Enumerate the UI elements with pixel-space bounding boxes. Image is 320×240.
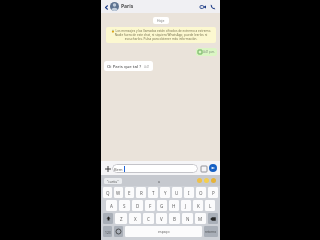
button[interactable]: G [157, 200, 167, 211]
button[interactable]: 4:41 p.m. [198, 50, 215, 54]
button[interactable] [204, 178, 209, 183]
staticText: M [198, 216, 203, 222]
button[interactable] [211, 178, 216, 183]
button[interactable]: Oi Paris que tal ? [107, 63, 150, 69]
staticText: espaço [158, 229, 170, 234]
staticText: 4:41 p.m. [203, 50, 215, 54]
button[interactable]: E [125, 187, 134, 198]
button[interactable]: D [132, 200, 143, 211]
button[interactable]: Camera [199, 164, 208, 173]
button[interactable]: W [114, 187, 123, 198]
button[interactable]: A [106, 200, 117, 211]
button[interactable] [197, 178, 202, 183]
button[interactable]: F [145, 200, 155, 211]
staticText: C [147, 216, 150, 222]
button[interactable]: Return [204, 226, 218, 237]
staticText: P [212, 190, 215, 196]
staticText: D [136, 203, 140, 209]
staticText: Paris [121, 3, 134, 10]
staticText: X [134, 216, 137, 222]
staticText: R [140, 190, 143, 196]
staticText: a [158, 179, 160, 183]
button[interactable]: K [193, 200, 203, 211]
staticText: Z [120, 216, 123, 222]
staticText: 🔒 Los mensajes y las llamadas están cifr… [110, 29, 212, 41]
button[interactable]: I [184, 187, 194, 198]
staticText: E [128, 190, 131, 196]
button[interactable]: Video call [198, 2, 208, 12]
button[interactable]: Z [115, 213, 127, 224]
button[interactable]: M [195, 213, 206, 224]
staticText: Oi Paris que tal ? [107, 63, 142, 69]
staticText: T [152, 190, 155, 196]
button[interactable]: espaço [125, 226, 202, 237]
staticText: G [160, 203, 164, 209]
button[interactable]: H [169, 200, 179, 211]
staticText: V [160, 216, 163, 222]
staticText: B [173, 216, 176, 222]
button[interactable]: Q [103, 187, 112, 198]
staticText: L [209, 203, 212, 209]
button[interactable]: Numbers [103, 226, 112, 237]
staticText: retorno [205, 230, 217, 234]
button[interactable]: B [169, 213, 180, 224]
staticText: 123 [105, 230, 111, 234]
button[interactable]: Voice call [208, 2, 218, 12]
button[interactable]: X [129, 213, 141, 224]
staticText: Hoje [157, 18, 165, 23]
staticText: A [110, 203, 113, 209]
staticText: I [188, 190, 190, 196]
button[interactable]: L [205, 200, 215, 211]
button[interactable]: 🔒 Los mensajes y las llamadas están cifr… [110, 29, 212, 41]
button[interactable]: C [143, 213, 154, 224]
staticText: O [199, 190, 203, 196]
staticText: N [186, 216, 190, 222]
button[interactable]: T [148, 187, 158, 198]
button[interactable]: N [182, 213, 193, 224]
button[interactable]: U [172, 187, 182, 198]
staticText: H [172, 203, 176, 209]
button[interactable]: Back [102, 3, 110, 11]
staticText: J [185, 203, 187, 209]
button[interactable]: R [136, 187, 146, 198]
button[interactable]: J [181, 200, 191, 211]
button[interactable]: Paris [110, 2, 198, 11]
button[interactable]: Shift [103, 213, 113, 224]
staticText: Bem [114, 167, 123, 172]
staticText: "curtiu" [107, 179, 119, 183]
staticText: S [123, 203, 126, 209]
button[interactable]: V [156, 213, 167, 224]
button[interactable]: Emoji [114, 226, 123, 237]
button[interactable]: Attach [103, 164, 112, 173]
staticText: F [149, 203, 152, 209]
button[interactable]: P [208, 187, 218, 198]
button[interactable]: Bem [114, 164, 196, 173]
button[interactable]: S [119, 200, 130, 211]
staticText: W [116, 190, 121, 196]
staticText: Y [164, 190, 167, 196]
staticText: 4:41 [144, 65, 150, 69]
button[interactable]: Y [160, 187, 170, 198]
staticText: U [175, 190, 179, 196]
button[interactable]: "curtiu" [107, 179, 119, 183]
button[interactable]: Send [208, 163, 218, 173]
button[interactable]: Backspace [208, 213, 218, 224]
button[interactable]: O [196, 187, 206, 198]
staticText: K [197, 203, 200, 209]
staticText: Q [106, 190, 110, 196]
